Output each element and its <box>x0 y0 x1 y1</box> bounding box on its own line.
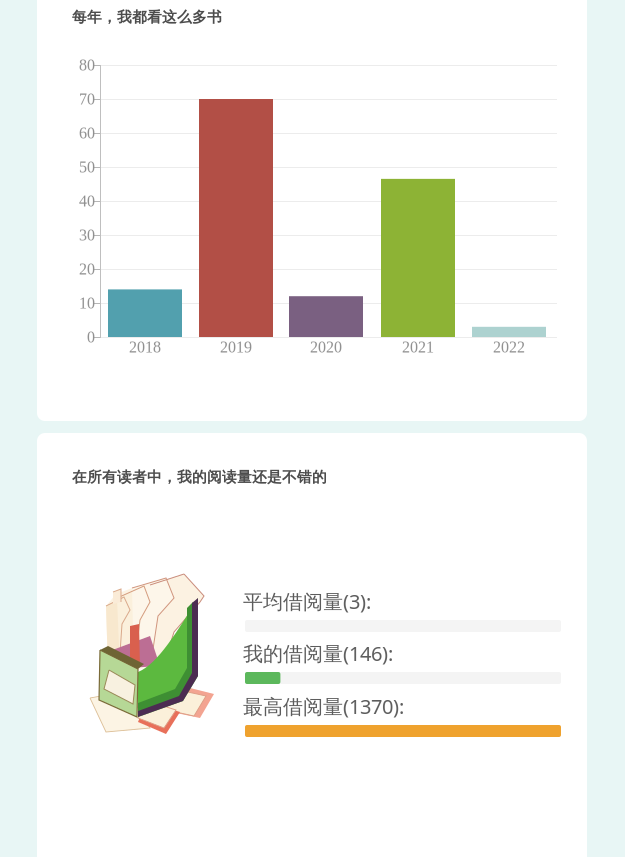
staticText: 2020 <box>310 338 342 356</box>
staticText: 2019 <box>220 338 252 356</box>
staticText: 平均借阅量(3): <box>243 588 371 615</box>
staticText: 最高借阅量(1370): <box>243 693 404 720</box>
staticText: 30 <box>79 226 95 244</box>
staticText: 60 <box>79 124 95 142</box>
staticText: 2021 <box>402 338 434 356</box>
staticText: 0 <box>87 328 95 346</box>
staticText: 2022 <box>493 338 525 356</box>
staticText: 在所有读者中，我的阅读量还是不错的 <box>72 468 327 486</box>
staticText: 每年，我都看这么多书 <box>72 8 222 26</box>
staticText: 40 <box>79 192 95 210</box>
staticText: 80 <box>79 56 95 74</box>
staticText: 10 <box>79 294 95 312</box>
staticText: 20 <box>79 260 95 278</box>
staticText: 70 <box>79 90 95 108</box>
staticText: 50 <box>79 158 95 176</box>
staticText: 2018 <box>129 338 161 356</box>
staticText: 我的借阅量(146): <box>243 640 393 667</box>
